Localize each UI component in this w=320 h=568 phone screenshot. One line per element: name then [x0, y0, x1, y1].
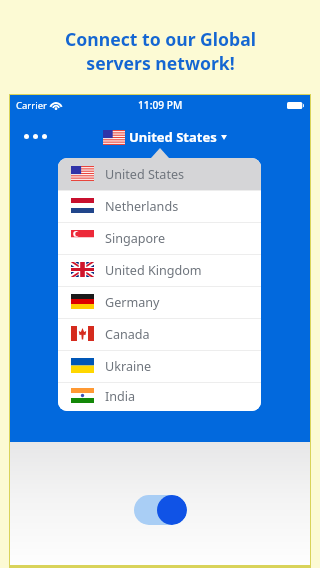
button[interactable]: Canada	[58, 318, 261, 350]
staticText: Germany	[105, 294, 160, 311]
staticText: Canada	[105, 326, 150, 343]
staticText: Ukraine	[105, 358, 152, 375]
button[interactable]: Netherlands	[58, 190, 261, 222]
staticText: United States	[105, 166, 185, 183]
button[interactable]: Ukraine	[58, 350, 261, 382]
staticText: Carrier	[16, 99, 47, 112]
button[interactable]: Germany	[58, 286, 261, 318]
button[interactable]: United Kingdom	[58, 254, 261, 286]
button[interactable]: United States	[99, 124, 231, 150]
staticText: servers network!	[86, 51, 235, 75]
button[interactable]: Menu	[20, 126, 51, 147]
staticText: 11:09 PM	[138, 98, 183, 112]
staticText: Singapore	[105, 230, 166, 247]
staticText: Connect to our Global	[65, 27, 256, 51]
staticText: United Kingdom	[105, 262, 202, 279]
staticText: India	[105, 388, 136, 405]
button[interactable]: India	[58, 382, 261, 411]
button[interactable]: VPN connection toggle	[134, 495, 187, 525]
button[interactable]: United States	[58, 158, 261, 190]
staticText: Netherlands	[105, 198, 179, 215]
staticText: United States	[129, 128, 217, 146]
button[interactable]: Singapore	[58, 222, 261, 254]
